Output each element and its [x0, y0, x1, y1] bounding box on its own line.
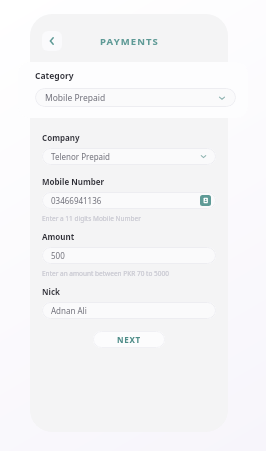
button[interactable]: 500 [42, 247, 216, 264]
button[interactable]: Back [42, 31, 62, 51]
button[interactable]: 03466941136 [42, 192, 216, 209]
button[interactable]: Telenor Prepaid [42, 148, 216, 165]
button[interactable]: Adnan Ali [42, 302, 216, 319]
staticText: Adnan Ali [51, 305, 87, 316]
staticText: Enter a 11 digits Mobile Number [42, 214, 141, 223]
button[interactable]: Pick contact [200, 195, 211, 206]
staticText: Mobile Number [42, 176, 105, 187]
staticText: Nick [42, 286, 60, 297]
staticText: Telenor Prepaid [51, 151, 111, 162]
staticText: Company [42, 132, 80, 143]
staticText: 03466941136 [51, 195, 102, 206]
staticText: Category [35, 70, 74, 82]
button[interactable]: NEXT [93, 331, 165, 348]
staticText: Mobile Prepaid [45, 92, 106, 104]
button[interactable]: Category [18, 62, 248, 118]
staticText: 500 [51, 250, 65, 261]
staticText: NEXT [117, 334, 141, 345]
staticText: Enter an amount between PKR 70 to 5000 [42, 269, 169, 278]
staticText: Amount [42, 231, 75, 242]
staticText: PAYMENTS [100, 35, 159, 48]
